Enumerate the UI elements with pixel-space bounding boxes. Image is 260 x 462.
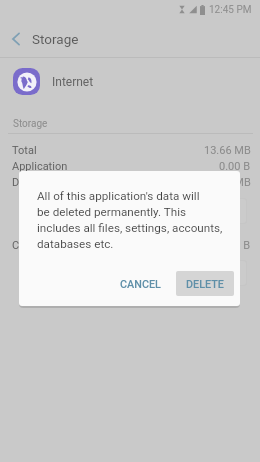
staticText: 12:45 PM bbox=[209, 4, 252, 16]
staticText: Data bbox=[12, 176, 35, 189]
staticText: 0.00 B bbox=[219, 239, 251, 252]
staticText: Total bbox=[12, 144, 37, 157]
staticText: Application bbox=[12, 160, 68, 173]
button[interactable]: Data bbox=[0, 174, 260, 190]
staticText: CLEAR DATA bbox=[171, 206, 226, 217]
button[interactable]: Internet bbox=[0, 58, 260, 105]
button[interactable]: Application bbox=[0, 158, 260, 174]
staticText: All of this application's data will be d… bbox=[37, 189, 223, 251]
staticText: Storage bbox=[32, 31, 79, 47]
staticText: 0.00 B bbox=[219, 160, 251, 173]
staticText: CANCEL bbox=[120, 278, 161, 291]
button[interactable]: CLEAR DATA bbox=[149, 198, 247, 224]
button[interactable]: Total bbox=[0, 142, 260, 158]
button[interactable]: DELETE bbox=[176, 271, 234, 296]
button[interactable]: CANCEL bbox=[112, 272, 168, 297]
staticText: Internet bbox=[52, 75, 94, 89]
staticText: DELETE bbox=[186, 278, 224, 291]
button[interactable]: Cache bbox=[0, 237, 260, 253]
staticText: CLEAR CACHE bbox=[167, 268, 230, 279]
staticText: 13.66 MB bbox=[204, 144, 251, 157]
staticText: Storage bbox=[13, 118, 48, 130]
staticText: Cache bbox=[12, 239, 43, 252]
button[interactable]: Navigate up bbox=[5, 28, 27, 50]
button[interactable]: CLEAR CACHE bbox=[149, 260, 247, 286]
staticText: 13.66 MB bbox=[204, 176, 251, 189]
